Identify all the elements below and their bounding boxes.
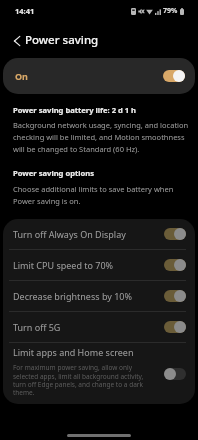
button[interactable]: Limit CPU speed to 70% bbox=[3, 250, 195, 280]
staticText: For maximum power saving, allow only sel… bbox=[13, 363, 146, 396]
button[interactable]: Turn off 5G bbox=[3, 312, 195, 342]
staticText: Limit apps and Home screen bbox=[13, 346, 134, 358]
staticText: Power saving battery life: 2 d 1 h bbox=[13, 105, 137, 115]
button[interactable]: On bbox=[3, 58, 195, 94]
button[interactable]: Decrease brightness by 10% bbox=[3, 281, 195, 311]
button[interactable]: Back bbox=[5, 29, 28, 52]
button[interactable]: Limit apps and Home screen bbox=[3, 343, 195, 404]
staticText: On bbox=[15, 70, 28, 82]
staticText: 79% bbox=[163, 6, 178, 16]
staticText: Limit CPU speed to 70% bbox=[13, 259, 114, 271]
staticText: Background network usage, syncing, and l… bbox=[13, 120, 191, 155]
staticText: Choose additional limits to save battery… bbox=[13, 184, 191, 207]
staticText: Decrease brightness by 10% bbox=[13, 290, 132, 302]
staticText: Turn off 5G bbox=[13, 321, 61, 333]
button[interactable]: Turn off Always On Display bbox=[3, 219, 195, 249]
staticText: 14:41 bbox=[15, 6, 35, 16]
staticText: Power saving options bbox=[13, 168, 94, 178]
staticText: Power saving bbox=[25, 32, 99, 48]
staticText: Turn off Always On Display bbox=[13, 228, 126, 240]
